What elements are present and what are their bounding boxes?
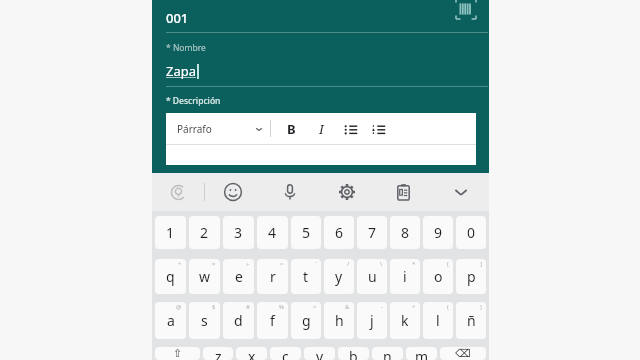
button[interactable]: k: [390, 302, 420, 339]
button[interactable]: s: [189, 302, 220, 339]
staticText: ): [480, 303, 482, 311]
staticText: +: [412, 303, 416, 311]
staticText: B: [287, 120, 296, 138]
button[interactable]: y: [324, 259, 354, 294]
button[interactable]: b: [338, 347, 369, 360]
button[interactable]: Portapapeles: [375, 173, 432, 211]
button[interactable]: g: [291, 302, 321, 339]
staticText: ⌫: [455, 347, 471, 360]
button[interactable]: Zapa: [152, 61, 489, 81]
staticText: * Nombre: [166, 42, 206, 54]
button[interactable]: Ocultar teclado: [432, 173, 489, 211]
button[interactable]: Lista con viñetas: [339, 118, 361, 140]
staticText: -: [381, 303, 383, 311]
button[interactable]: ñ: [456, 302, 486, 339]
button[interactable]: 4: [257, 216, 288, 249]
staticText: =: [280, 260, 284, 268]
button[interactable]: 2: [189, 216, 220, 249]
button[interactable]: p: [456, 259, 486, 294]
button[interactable]: q: [155, 259, 186, 294]
button[interactable]: 3: [223, 216, 254, 249]
button[interactable]: a: [155, 302, 186, 339]
staticText: 1: [166, 223, 175, 242]
staticText: &: [345, 303, 350, 311]
button[interactable]: Dictado por voz: [261, 173, 318, 211]
button[interactable]: c: [270, 347, 301, 360]
staticText: (: [447, 303, 449, 311]
staticText: ñ: [467, 311, 476, 330]
staticText: 2: [200, 223, 209, 242]
staticText: +: [178, 260, 182, 268]
staticText: y: [335, 267, 343, 286]
button[interactable]: i: [390, 259, 420, 294]
button[interactable]: 8: [390, 216, 420, 249]
staticText: z: [215, 347, 222, 360]
staticText: Párrafo: [177, 122, 212, 136]
staticText: I: [319, 120, 324, 138]
staticText: $: [212, 303, 216, 311]
button[interactable]: w: [189, 259, 220, 294]
button[interactable]: Párrafo: [166, 113, 270, 144]
staticText: c: [282, 347, 289, 360]
button[interactable]: d: [223, 302, 254, 339]
button[interactable]: Escanear código de barras: [449, 0, 483, 26]
button[interactable]: Google Lens: [152, 173, 204, 211]
staticText: s: [201, 311, 208, 330]
button[interactable]: 5: [291, 216, 321, 249]
button[interactable]: h: [324, 302, 354, 339]
button[interactable]: ⇧: [155, 347, 200, 360]
button[interactable]: ⌫: [440, 347, 486, 360]
staticText: %: [279, 303, 284, 311]
staticText: r: [270, 267, 276, 286]
staticText: p: [467, 267, 476, 286]
button[interactable]: Emoji: [205, 173, 261, 211]
button[interactable]: m: [406, 347, 437, 360]
staticText: w: [199, 267, 211, 286]
button[interactable]: n: [372, 347, 403, 360]
button[interactable]: B: [280, 118, 302, 140]
button[interactable]: l: [423, 302, 453, 339]
staticText: 001: [166, 9, 189, 27]
staticText: 4: [268, 223, 277, 242]
staticText: b: [349, 347, 358, 360]
button[interactable]: f: [257, 302, 288, 339]
button[interactable]: j: [357, 302, 387, 339]
staticText: \: [380, 260, 383, 268]
button[interactable]: e: [223, 259, 254, 294]
staticText: #: [246, 303, 250, 311]
staticText: [: [447, 260, 449, 268]
button[interactable]: u: [357, 259, 387, 294]
button[interactable]: I: [310, 118, 332, 140]
staticText: m: [415, 347, 429, 360]
button[interactable]: 0: [456, 216, 486, 249]
staticText: ×: [212, 260, 216, 268]
button[interactable]: t: [291, 259, 321, 294]
staticText: n: [383, 347, 392, 360]
button[interactable]: o: [423, 259, 453, 294]
button[interactable]: v: [304, 347, 335, 360]
staticText: u: [368, 267, 377, 286]
staticText: a: [167, 311, 175, 330]
staticText: h: [335, 311, 344, 330]
staticText: f: [270, 311, 275, 330]
button[interactable]: Lista numerada: [367, 118, 389, 140]
button[interactable]: z: [203, 347, 233, 360]
staticText: j: [370, 311, 374, 330]
staticText: ^: [313, 303, 317, 311]
staticText: e: [235, 267, 243, 286]
button[interactable]: 001: [152, 0, 489, 32]
button[interactable]: 9: [423, 216, 453, 249]
button[interactable]: Ajustes: [318, 173, 375, 211]
staticText: 5: [302, 223, 311, 242]
staticText: 0: [467, 223, 476, 242]
staticText: ]: [480, 260, 482, 268]
button[interactable]: 1: [155, 216, 186, 249]
button[interactable]: r: [257, 259, 288, 294]
button[interactable]: 7: [357, 216, 387, 249]
staticText: o: [434, 267, 443, 286]
button[interactable]: 6: [324, 216, 354, 249]
staticText: /: [347, 260, 350, 268]
button[interactable]: x: [236, 347, 267, 360]
staticText: Zapa: [166, 62, 197, 80]
